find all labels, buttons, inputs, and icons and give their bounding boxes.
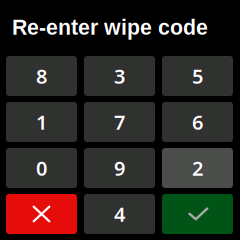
button[interactable]: Delete [6,194,77,234]
staticText: 0 [36,155,47,181]
staticText: 3 [114,63,125,89]
staticText: 8 [36,63,47,89]
staticText: 2 [192,155,203,181]
staticText: 4 [114,201,125,227]
button[interactable]: Confirm [162,194,233,234]
button[interactable]: 6 [162,102,233,142]
button[interactable]: 8 [6,56,77,96]
staticText: 7 [114,109,125,135]
button[interactable]: 0 [6,148,77,188]
button[interactable]: 9 [84,148,155,188]
staticText: 9 [114,155,125,181]
button[interactable]: 5 [162,56,233,96]
staticText: 1 [36,109,47,135]
staticText: 6 [192,109,203,135]
staticText: 5 [192,63,203,89]
staticText: Re-enter wipe code [12,15,208,39]
button[interactable]: 2 [162,148,233,188]
button[interactable]: 3 [84,56,155,96]
button[interactable]: 7 [84,102,155,142]
button[interactable]: 4 [84,194,155,234]
button[interactable]: 1 [6,102,77,142]
